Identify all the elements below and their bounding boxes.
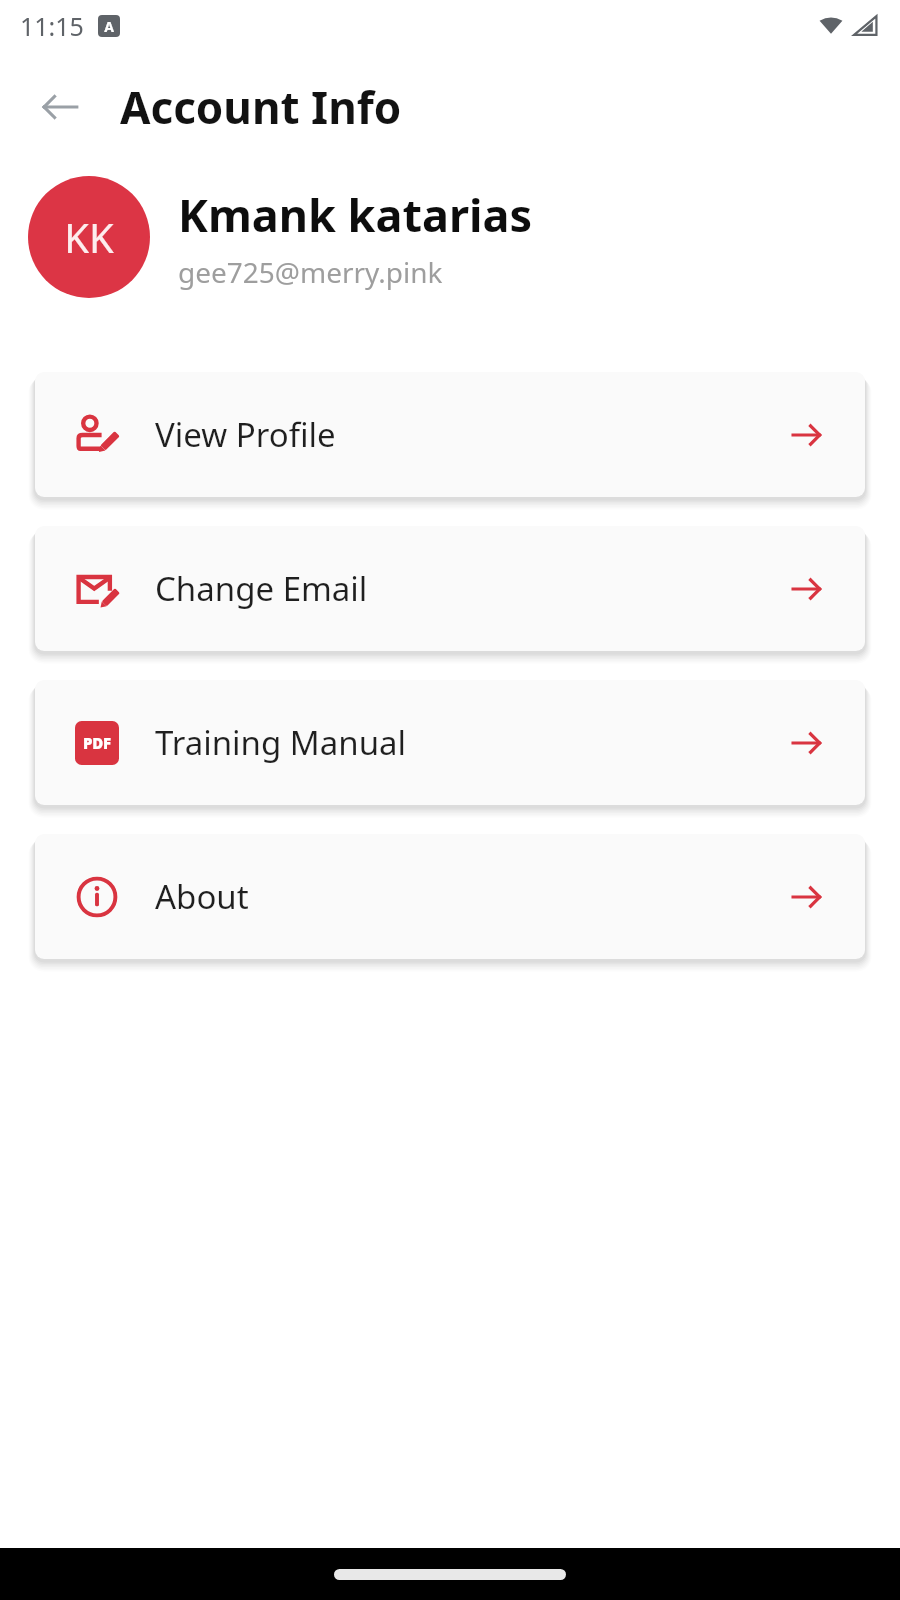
staticText: View Profile <box>155 412 336 457</box>
button[interactable]: Back <box>28 75 92 139</box>
staticText: 11:15 <box>20 9 84 43</box>
staticText: Account Info <box>120 77 402 137</box>
staticText: Training Manual <box>155 720 407 765</box>
staticText: About <box>155 874 249 919</box>
button[interactable]: PDF <box>35 680 865 805</box>
staticText: Change Email <box>155 566 368 611</box>
button[interactable]: About <box>35 834 865 959</box>
staticText: gee725@merry.pink <box>178 253 443 291</box>
staticText: Kmank katarias <box>178 184 533 245</box>
staticText: PDF <box>83 733 111 753</box>
staticText: KK <box>64 210 114 264</box>
staticText: A <box>104 17 114 36</box>
button[interactable]: View Profile <box>35 372 865 497</box>
button[interactable]: Change Email <box>35 526 865 651</box>
